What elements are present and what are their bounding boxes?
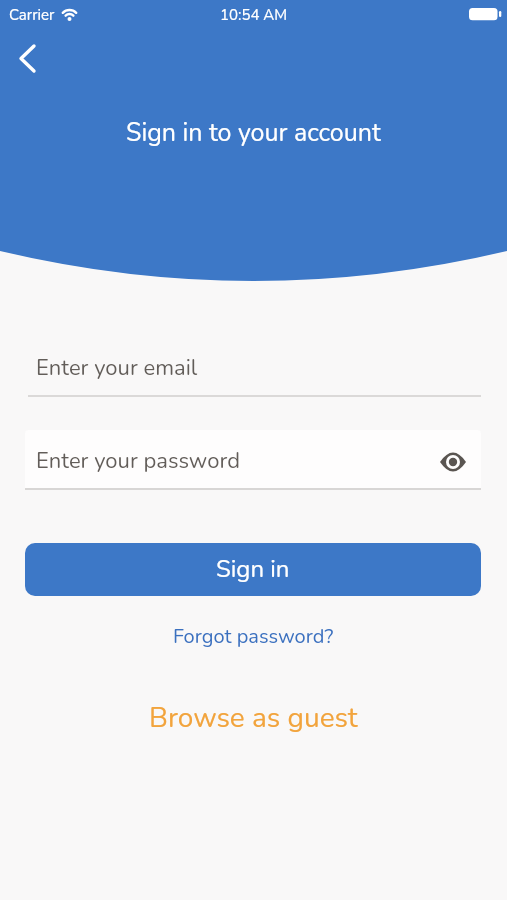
staticText: Forgot password? bbox=[173, 623, 334, 650]
button[interactable] bbox=[440, 452, 466, 472]
staticText: Enter your password bbox=[36, 446, 241, 476]
button[interactable]: Browse as guest bbox=[139, 694, 368, 742]
button[interactable]: Enter your password bbox=[25, 430, 481, 490]
staticText: Enter your email bbox=[36, 353, 198, 383]
button[interactable]: Forgot password? bbox=[163, 618, 344, 655]
button[interactable]: Enter your email bbox=[28, 340, 481, 397]
staticText: Carrier bbox=[9, 5, 55, 25]
staticText: Sign in to your account bbox=[126, 116, 381, 150]
button[interactable] bbox=[8, 40, 48, 78]
staticText: Sign in bbox=[216, 553, 290, 586]
button[interactable]: Sign in bbox=[25, 543, 481, 596]
staticText: Browse as guest bbox=[149, 699, 358, 737]
staticText: 10:54 AM bbox=[220, 5, 288, 25]
